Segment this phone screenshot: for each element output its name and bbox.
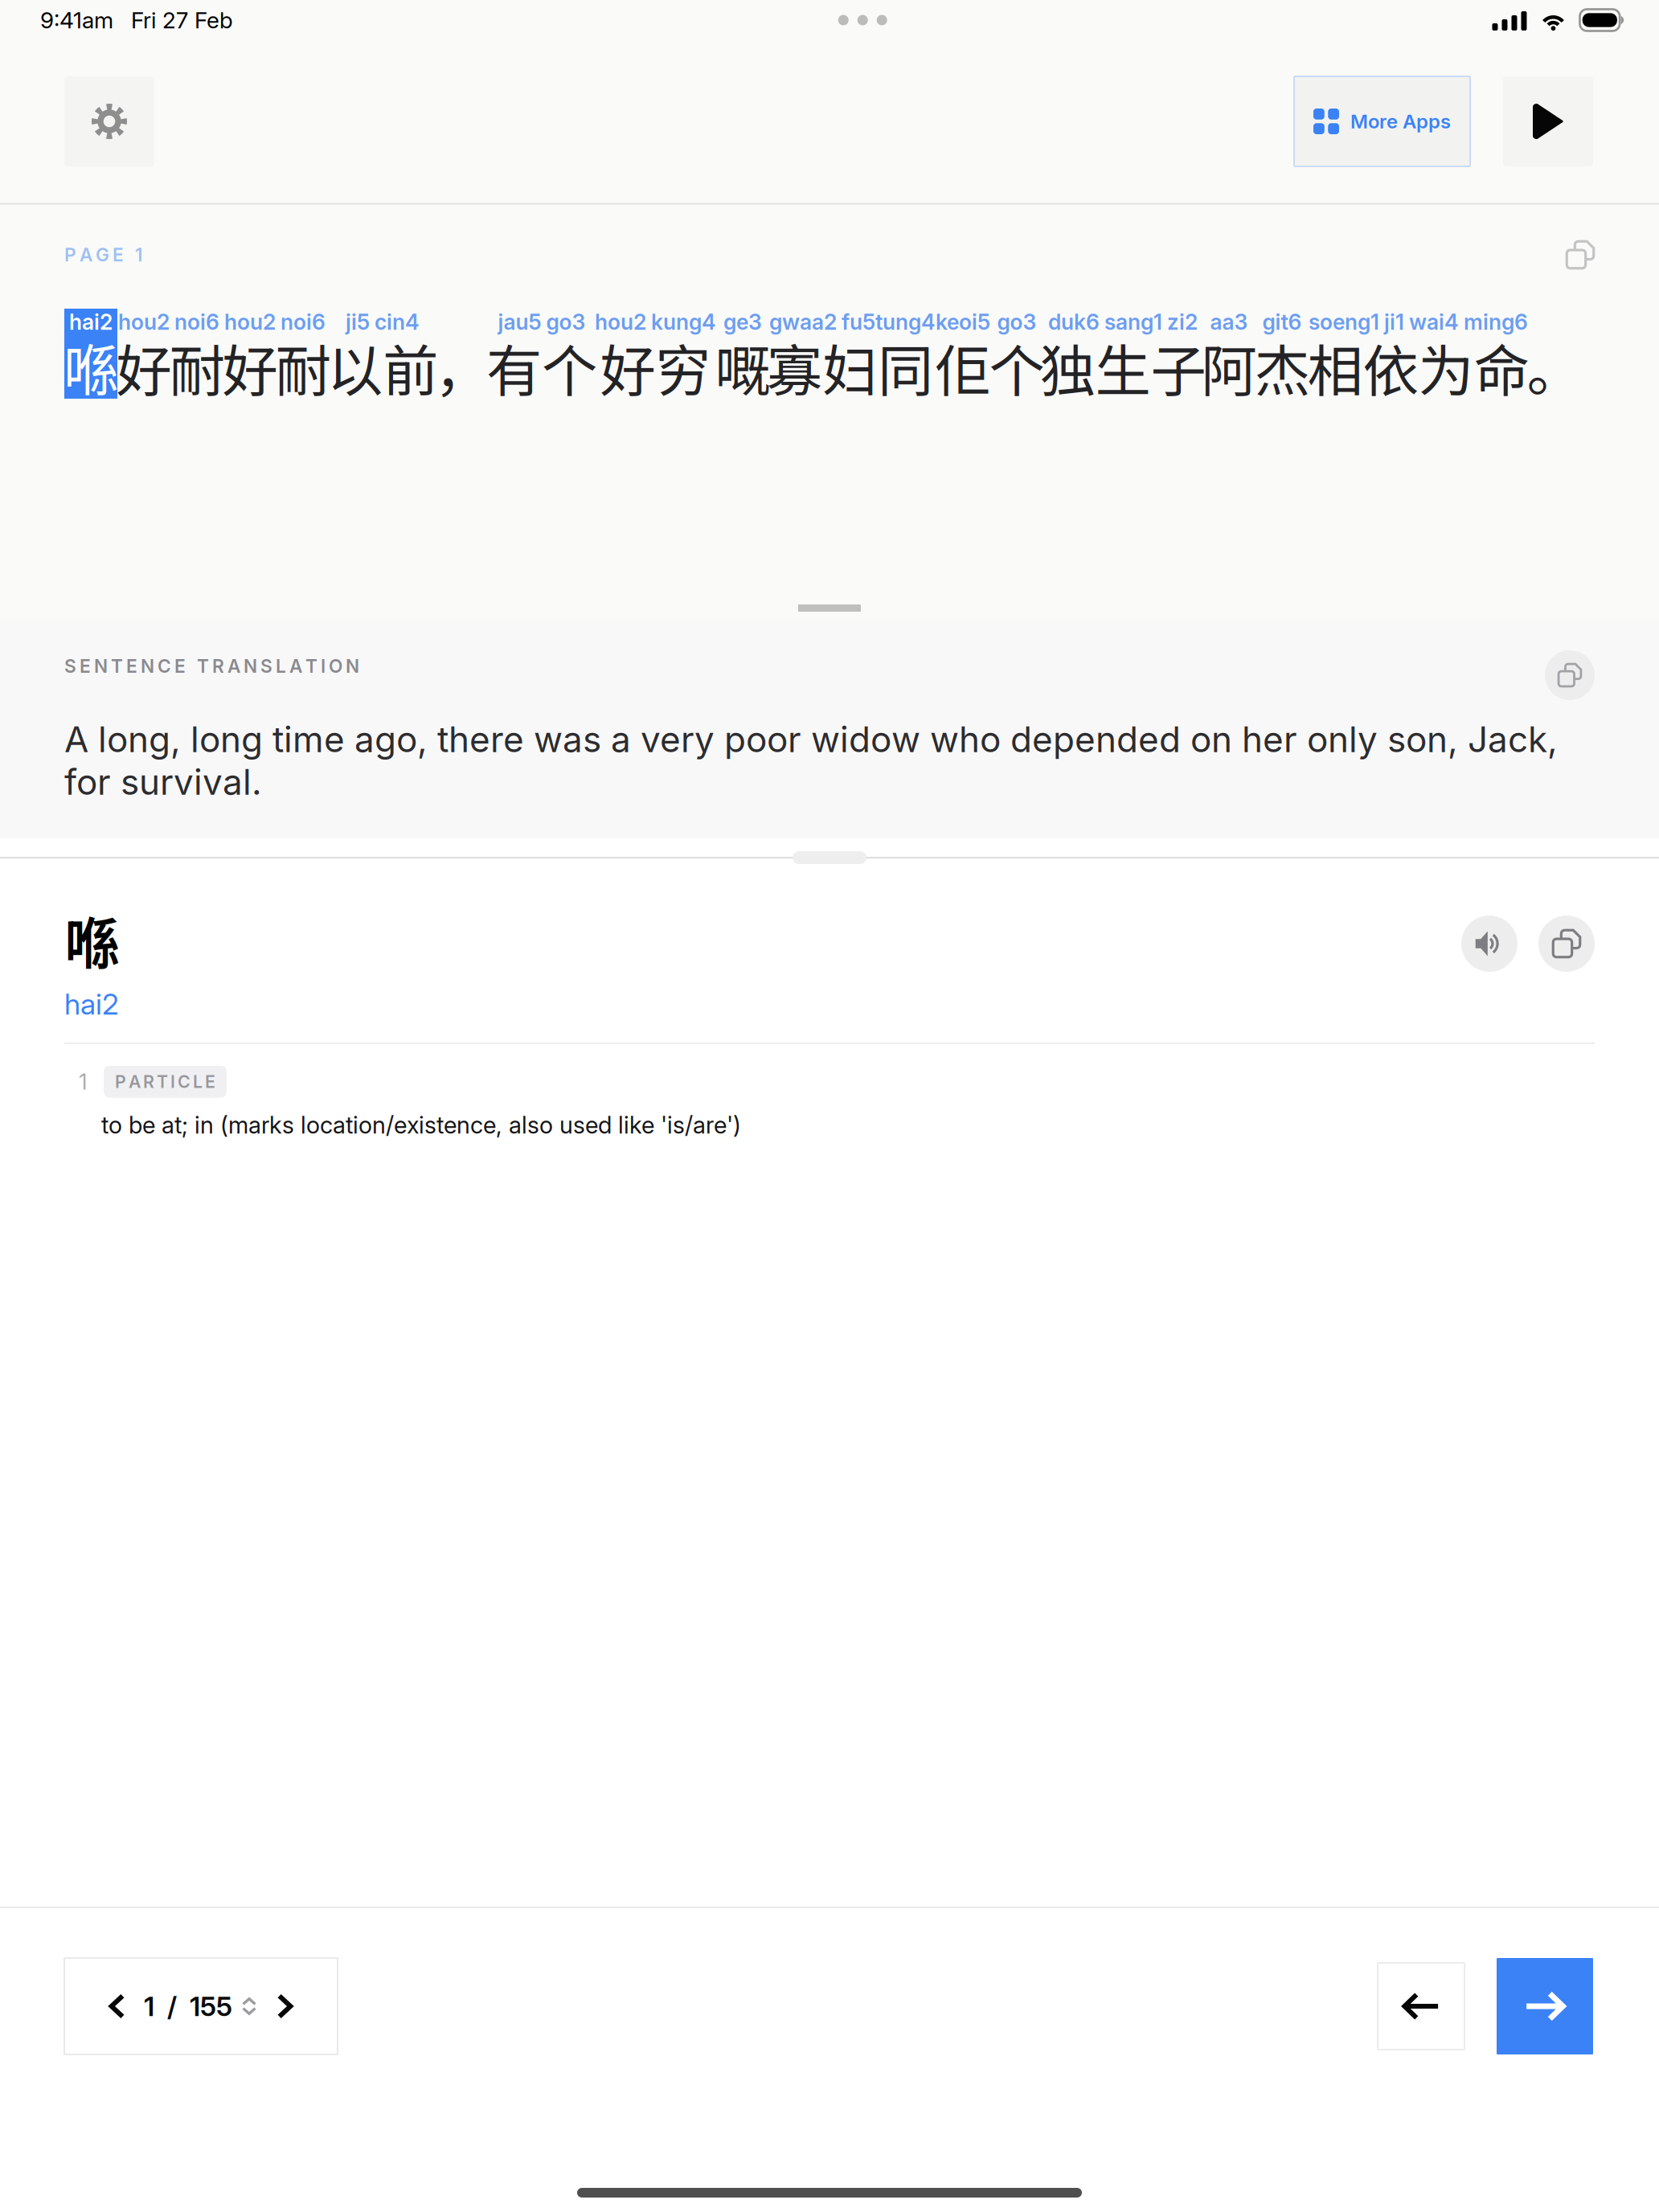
staticText: duk6 sang1 zi2 <box>1048 309 1198 335</box>
staticText: hai2 <box>69 309 113 335</box>
staticText: noi6 <box>174 309 219 335</box>
staticText: 喺 <box>63 327 119 407</box>
staticText: 好穷 <box>600 327 711 407</box>
staticText: 耐 <box>275 327 331 407</box>
staticText: soeng1 ji1 wai4 ming6 <box>1309 309 1528 335</box>
button[interactable]: Settings <box>64 76 154 166</box>
button[interactable]: Copy word <box>1538 916 1595 972</box>
staticText: 有个 <box>486 327 597 407</box>
button[interactable]: Next page <box>258 1973 311 2039</box>
staticText: 寡妇 <box>767 327 878 407</box>
staticText: 佢 <box>935 327 991 407</box>
staticText: to be at; in (marks location/existence, … <box>101 1111 741 1139</box>
staticText: P A R T I C L E <box>115 1071 215 1092</box>
staticText: More Apps <box>1350 110 1451 133</box>
staticText: 独生子 <box>1040 327 1206 407</box>
staticText: hai2 <box>64 987 119 1022</box>
staticText: hou2 <box>224 309 276 335</box>
staticText: 好 <box>116 327 172 407</box>
staticText: Fri 27 Feb <box>131 7 233 34</box>
staticText: A long, long time ago, there was a very … <box>64 718 1558 803</box>
staticText: 好 <box>222 327 278 407</box>
staticText: 9:41am <box>40 7 113 34</box>
staticText: noi6 <box>281 309 326 335</box>
staticText: P A G E 1 <box>64 244 142 266</box>
staticText: 以前 <box>327 327 438 407</box>
staticText: 嘅 <box>715 327 770 407</box>
staticText: keoi5 <box>936 309 990 335</box>
staticText: ge3 <box>723 309 762 335</box>
staticText: tung4 <box>875 309 936 335</box>
button[interactable]: More Apps <box>1294 76 1470 166</box>
button[interactable]: Next <box>1497 1958 1593 2054</box>
button[interactable]: Back <box>1378 1963 1464 2050</box>
staticText: S E N T E N C E T R A N S L A T I O N <box>64 655 359 677</box>
staticText: hou2 <box>118 309 170 335</box>
staticText: aa3 <box>1210 309 1248 335</box>
staticText: 阿 <box>1201 327 1257 407</box>
staticText: 喺 <box>64 899 120 980</box>
staticText: 。 <box>1527 327 1582 407</box>
staticText: 1 <box>79 1069 87 1095</box>
button[interactable]: Play <box>1503 76 1593 166</box>
staticText: 相依为命 <box>1307 327 1529 407</box>
staticText: gwaa2 fu5 <box>769 309 875 335</box>
staticText: 个 <box>989 327 1045 407</box>
staticText: 耐 <box>169 327 225 407</box>
staticText: ， <box>434 327 490 407</box>
staticText: git6 <box>1262 309 1302 335</box>
staticText: go3 <box>997 309 1036 335</box>
staticText: jau5 go3 <box>498 309 586 335</box>
staticText: 杰 <box>1254 327 1310 407</box>
staticText: 1 / 155 <box>144 1990 232 2022</box>
staticText: 同 <box>878 327 933 407</box>
button[interactable]: Copy sentence <box>1566 240 1595 269</box>
button[interactable]: Play pronunciation <box>1461 916 1518 972</box>
button[interactable]: Copy translation <box>1545 650 1595 700</box>
staticText: hou2 kung4 <box>595 309 716 335</box>
staticText: ji5 cin4 <box>346 309 420 335</box>
button[interactable]: Previous page <box>91 1973 144 2039</box>
